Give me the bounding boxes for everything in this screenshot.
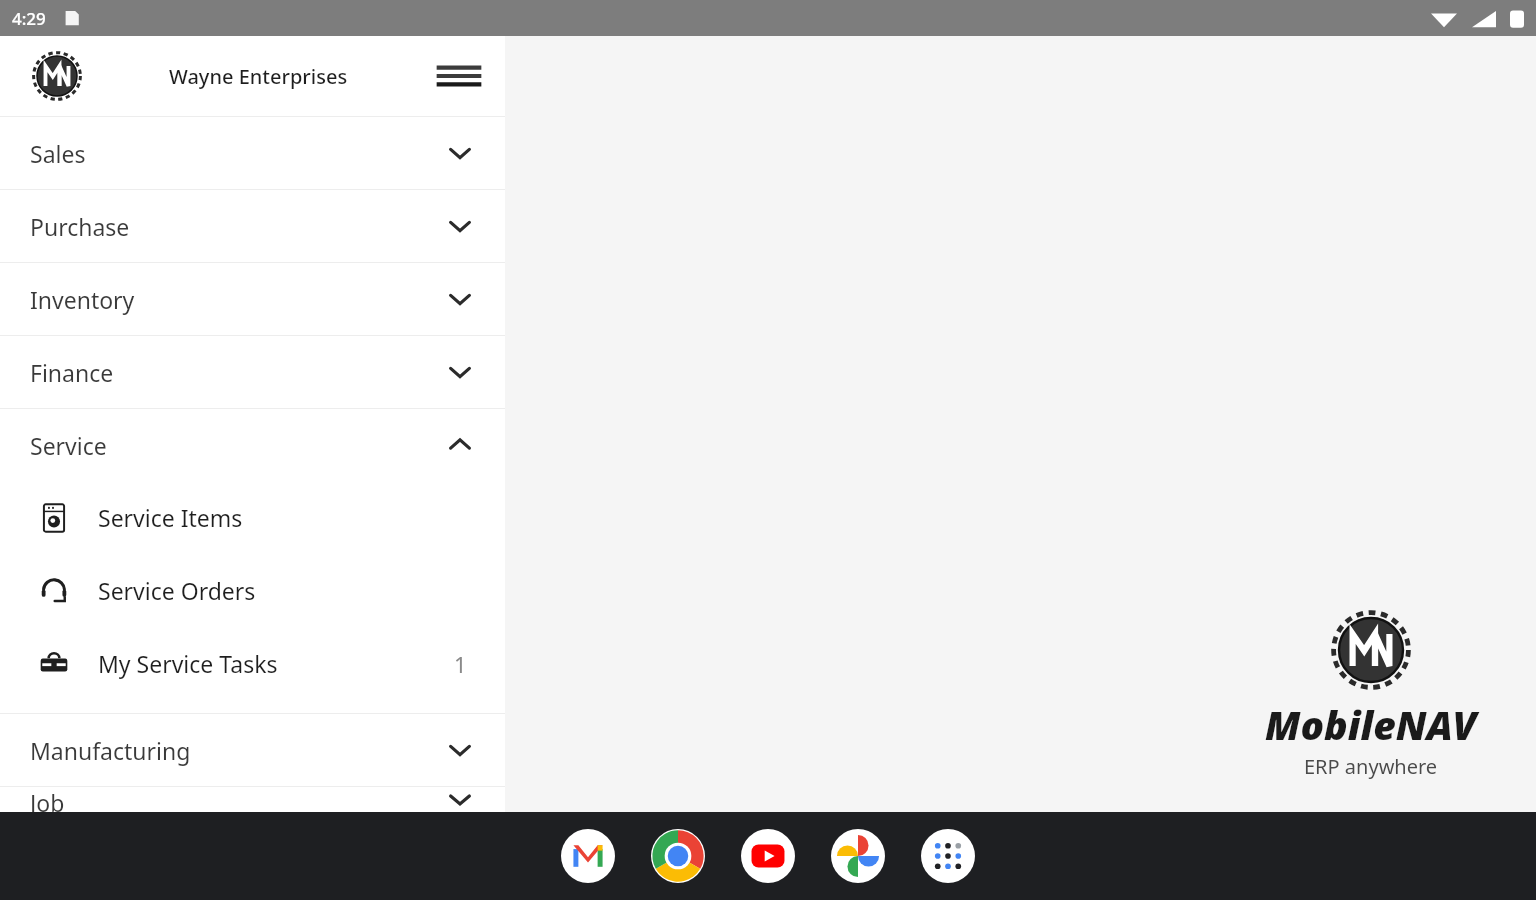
button[interactable]: Service [0,409,505,481]
staticText: Manufacturing [30,735,191,766]
staticText: ERP anywhere [1304,753,1438,780]
button[interactable]: Manufacturing [0,714,505,786]
button[interactable]: Service Items [0,481,505,554]
staticText: Service [30,430,107,461]
button[interactable]: YouTube [741,829,795,883]
button[interactable]: Inventory [0,263,505,335]
staticText: Finance [30,357,114,388]
button[interactable]: Purchase [0,190,505,262]
button[interactable]: Job [0,787,505,812]
staticText: Service Orders [98,575,256,606]
staticText: 1 [454,649,467,679]
button[interactable]: My Service Tasks [0,627,505,700]
button[interactable]: Service Orders [0,554,505,627]
staticText: My Service Tasks [98,648,278,679]
button[interactable]: All apps [921,829,975,883]
staticText: 4:29 [12,7,46,30]
staticText: Purchase [30,211,130,242]
button[interactable]: Gmail [561,829,615,883]
button[interactable]: Sales [0,117,505,189]
button[interactable]: Finance [0,336,505,408]
staticText: Wayne Enterprises [169,63,348,90]
staticText: Job [30,787,65,812]
staticText: Inventory [30,284,135,315]
button[interactable]: Chrome [651,829,705,883]
button[interactable]: Menu [431,48,487,104]
staticText: Sales [30,138,86,169]
button[interactable]: Google Photos [831,829,885,883]
staticText: MobileNAV [1265,698,1477,751]
staticText: Service Items [98,502,243,533]
